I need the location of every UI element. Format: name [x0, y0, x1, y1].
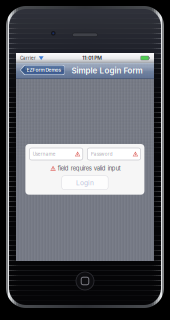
staticText: field requires valid input: [58, 165, 121, 172]
staticText: Carrier: [20, 55, 36, 61]
staticText: Login: [76, 179, 94, 187]
staticText: EZForm Demos: [26, 67, 61, 73]
staticText: Username: [33, 151, 56, 157]
staticText: Password: [91, 151, 113, 157]
staticText: 11:01 PM: [82, 55, 102, 61]
staticText: Simple Login Form: [71, 66, 142, 75]
button[interactable]: EZForm Demos: [20, 65, 65, 75]
button[interactable]: Login: [62, 176, 108, 190]
